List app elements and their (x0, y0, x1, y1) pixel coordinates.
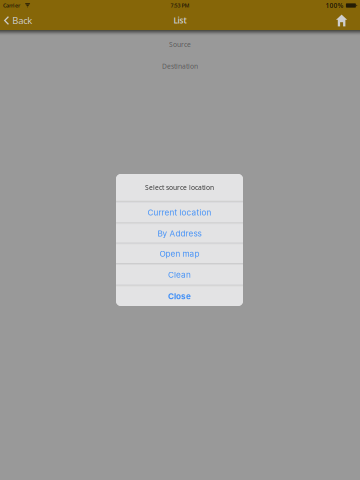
button[interactable]: Close (116, 287, 243, 306)
staticText: Open map (159, 249, 199, 259)
staticText: Current location (147, 208, 211, 217)
button[interactable]: Current location (116, 203, 243, 222)
staticText: 100% (325, 1, 343, 10)
staticText: Select source location (145, 183, 214, 192)
button[interactable]: Open map (116, 245, 243, 263)
staticText: Clean (168, 270, 191, 280)
staticText: Carrier (3, 2, 20, 9)
staticText: Back (12, 14, 32, 27)
staticText: By Address (157, 229, 201, 238)
staticText: 7:53 PM (170, 2, 189, 9)
staticText: Destination (162, 62, 198, 71)
button[interactable]: Clean (116, 265, 243, 285)
button[interactable]: Home (330, 11, 360, 30)
button[interactable]: By Address (116, 224, 243, 243)
staticText: Source (169, 40, 191, 49)
staticText: List (173, 15, 186, 26)
staticText: Close (168, 291, 191, 301)
button[interactable]: Back (0, 11, 38, 30)
